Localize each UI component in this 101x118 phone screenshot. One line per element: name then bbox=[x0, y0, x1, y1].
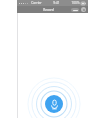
staticText: 9:41 bbox=[53, 1, 60, 5]
staticText: 100% bbox=[71, 1, 80, 5]
staticText: Record bbox=[43, 8, 54, 12]
staticText: Carrier bbox=[31, 1, 42, 5]
button[interactable]: Toggle view bbox=[71, 8, 79, 12]
button[interactable]: Record voice bbox=[45, 95, 63, 113]
button[interactable]: Settings bbox=[81, 7, 86, 12]
